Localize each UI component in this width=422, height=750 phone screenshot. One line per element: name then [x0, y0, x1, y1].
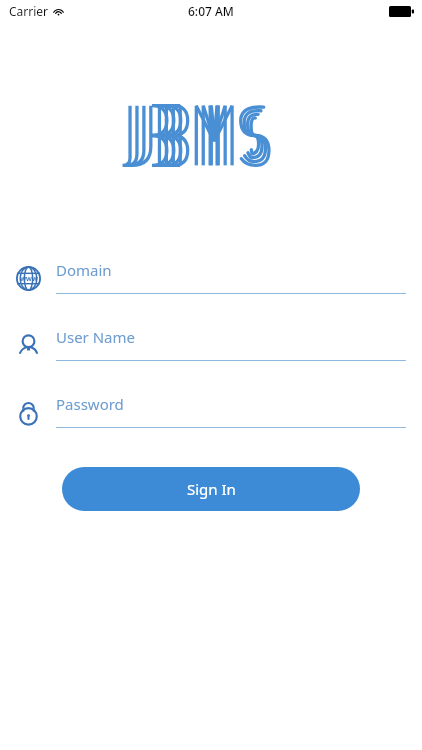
button[interactable]: Password: [0, 394, 422, 440]
button[interactable]: Sign In: [62, 467, 360, 511]
staticText: Carrier: [9, 3, 49, 19]
other: User name: [16, 333, 41, 358]
staticText: Password: [56, 394, 124, 414]
staticText: User Name: [56, 327, 136, 347]
button[interactable]: Domain: [0, 260, 422, 306]
other: Password: [16, 400, 41, 425]
staticText: WWW: [20, 275, 38, 283]
button[interactable]: User name: [0, 327, 422, 373]
staticText: Domain: [56, 260, 112, 280]
staticText: Sign In: [187, 479, 236, 499]
staticText: 6:07 AM: [188, 3, 234, 19]
other: Domain: [16, 266, 41, 291]
